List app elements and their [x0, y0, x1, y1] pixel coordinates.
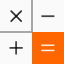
button[interactable]: Subtract [32, 0, 64, 32]
button[interactable]: Add [0, 32, 32, 64]
button[interactable]: Multiply [0, 0, 32, 32]
button[interactable]: Equals [32, 32, 64, 64]
